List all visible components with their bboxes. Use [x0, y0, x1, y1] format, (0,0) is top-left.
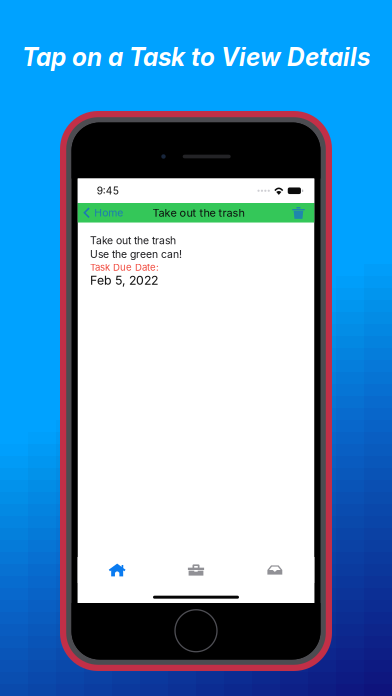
- staticText: Task Due Date:: [90, 261, 159, 273]
- staticText: Home: [94, 206, 123, 219]
- button[interactable]: Delete task: [284, 203, 314, 222]
- button[interactable]: Home: [78, 203, 131, 222]
- staticText: Tap on a Task to View Details: [22, 42, 370, 72]
- button[interactable]: Home: [78, 557, 157, 583]
- staticText: Use the green can!: [90, 248, 182, 260]
- staticText: 9:45: [97, 185, 119, 197]
- staticText: Take out the trash: [152, 206, 244, 219]
- staticText: Feb 5, 2022: [90, 273, 158, 288]
- staticText: Take out the trash: [90, 234, 176, 247]
- button[interactable]: Inbox: [235, 557, 314, 583]
- button[interactable]: Work: [157, 557, 235, 583]
